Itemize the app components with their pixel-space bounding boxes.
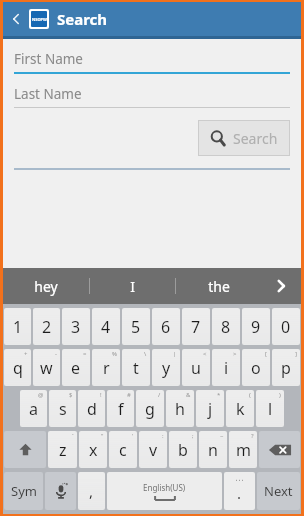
button[interactable]: 7 <box>182 308 210 345</box>
button[interactable]: 5 <box>122 308 150 345</box>
staticText: ⋯ <box>235 475 244 485</box>
button[interactable]: + <box>4 349 31 386</box>
button[interactable]: Last Name <box>14 83 290 108</box>
button[interactable]: 2 <box>33 308 60 345</box>
staticText: r <box>103 357 110 379</box>
staticText: q <box>13 357 23 379</box>
button[interactable]: I <box>90 268 175 304</box>
button[interactable]: | <box>152 349 180 386</box>
button[interactable]: % <box>92 349 120 386</box>
button[interactable]: \ <box>122 349 150 386</box>
staticText: ' <box>132 432 134 440</box>
staticText: < <box>203 350 207 358</box>
button[interactable]: - <box>33 349 60 386</box>
button[interactable]: 1 <box>4 308 31 345</box>
button[interactable]: > <box>212 349 240 386</box>
staticText: Sym <box>11 482 37 500</box>
button[interactable]: Sym <box>4 472 43 510</box>
staticText: ` <box>72 432 74 440</box>
staticText: c <box>119 439 127 461</box>
button[interactable]: ' <box>109 431 137 468</box>
staticText: h <box>175 398 185 420</box>
button[interactable]: Navigate up <box>5 8 27 30</box>
button[interactable]: # <box>107 390 134 427</box>
button[interactable]: hey <box>3 268 89 304</box>
staticText: m <box>236 439 251 461</box>
staticText: 3 <box>71 316 81 338</box>
staticText: z <box>59 439 67 461</box>
staticText: 0 <box>281 316 291 338</box>
staticText: NSOPW <box>32 17 47 22</box>
button[interactable]: Backspace <box>259 431 300 468</box>
button[interactable]: Space <box>107 472 222 510</box>
staticText: I <box>130 277 135 296</box>
staticText: First Name <box>14 50 83 68</box>
button[interactable]: 0 <box>272 308 300 345</box>
button[interactable]: Shift <box>4 431 46 468</box>
staticText: y <box>162 357 171 379</box>
button[interactable]: Search <box>198 120 290 156</box>
staticText: = <box>83 350 87 358</box>
staticText: l <box>268 398 273 420</box>
staticText: f <box>118 398 124 420</box>
staticText: 5 <box>131 316 141 338</box>
staticText: 4 <box>101 316 111 338</box>
button[interactable]: 9 <box>242 308 270 345</box>
button[interactable]: ] <box>272 349 300 386</box>
button[interactable]: 6 <box>152 308 180 345</box>
button[interactable]: the <box>176 268 261 304</box>
button[interactable]: ; <box>169 431 197 468</box>
button[interactable]: ) <box>256 390 284 427</box>
button[interactable]: < <box>182 349 210 386</box>
button[interactable]: Voice input <box>45 472 76 510</box>
staticText: Next <box>264 482 293 500</box>
button[interactable]: First Name <box>14 48 290 74</box>
staticText: k <box>236 398 245 420</box>
staticText: o <box>251 357 261 379</box>
button[interactable]: : <box>139 431 167 468</box>
button[interactable]: & <box>166 390 194 427</box>
staticText: * <box>217 391 221 399</box>
staticText: w <box>40 357 53 379</box>
staticText: a <box>29 398 38 420</box>
staticText: [ <box>265 350 267 358</box>
staticText: ] <box>295 350 297 358</box>
button[interactable]: / <box>136 390 164 427</box>
staticText: n <box>208 439 218 461</box>
button[interactable]: 4 <box>92 308 120 345</box>
staticText: e <box>71 357 81 379</box>
staticText: 2 <box>42 316 52 338</box>
button[interactable]: ? <box>229 431 257 468</box>
staticText: hey <box>34 277 58 296</box>
staticText: p <box>281 357 291 379</box>
button[interactable]: ! <box>78 390 105 427</box>
button[interactable]: @ <box>20 390 47 427</box>
staticText: : <box>162 432 164 440</box>
button[interactable]: ` <box>48 431 77 468</box>
staticText: g <box>145 398 155 420</box>
button[interactable]: " <box>79 431 107 468</box>
button[interactable]: ~ <box>199 431 227 468</box>
staticText: - <box>55 350 57 358</box>
staticText: d <box>87 398 97 420</box>
button[interactable]: More suggestions <box>261 268 301 304</box>
button[interactable]: , <box>78 472 105 510</box>
staticText: i <box>224 357 229 379</box>
staticText: + <box>24 350 28 358</box>
button[interactable]: = <box>62 349 90 386</box>
button[interactable]: * <box>196 390 224 427</box>
staticText: # <box>127 391 131 399</box>
staticText: @ <box>38 391 44 399</box>
staticText: $ <box>69 391 73 399</box>
button[interactable]: ( <box>226 390 254 427</box>
button[interactable]: Next <box>257 472 300 510</box>
button[interactable]: $ <box>49 390 76 427</box>
staticText: 6 <box>161 316 171 338</box>
button[interactable]: 3 <box>62 308 90 345</box>
button[interactable]: ⋯ <box>224 472 255 510</box>
staticText: u <box>191 357 201 379</box>
button[interactable]: [ <box>242 349 270 386</box>
staticText: English(US) <box>143 482 186 493</box>
button[interactable]: 8 <box>212 308 240 345</box>
staticText: , <box>89 481 94 501</box>
